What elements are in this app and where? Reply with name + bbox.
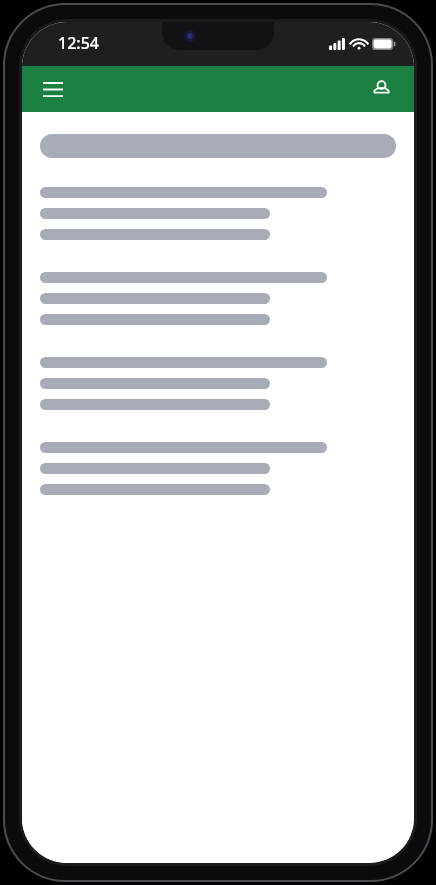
- button[interactable]: Open navigation menu: [32, 68, 74, 110]
- button[interactable]: Account: [360, 68, 402, 110]
- staticText: 12:54: [58, 32, 99, 54]
